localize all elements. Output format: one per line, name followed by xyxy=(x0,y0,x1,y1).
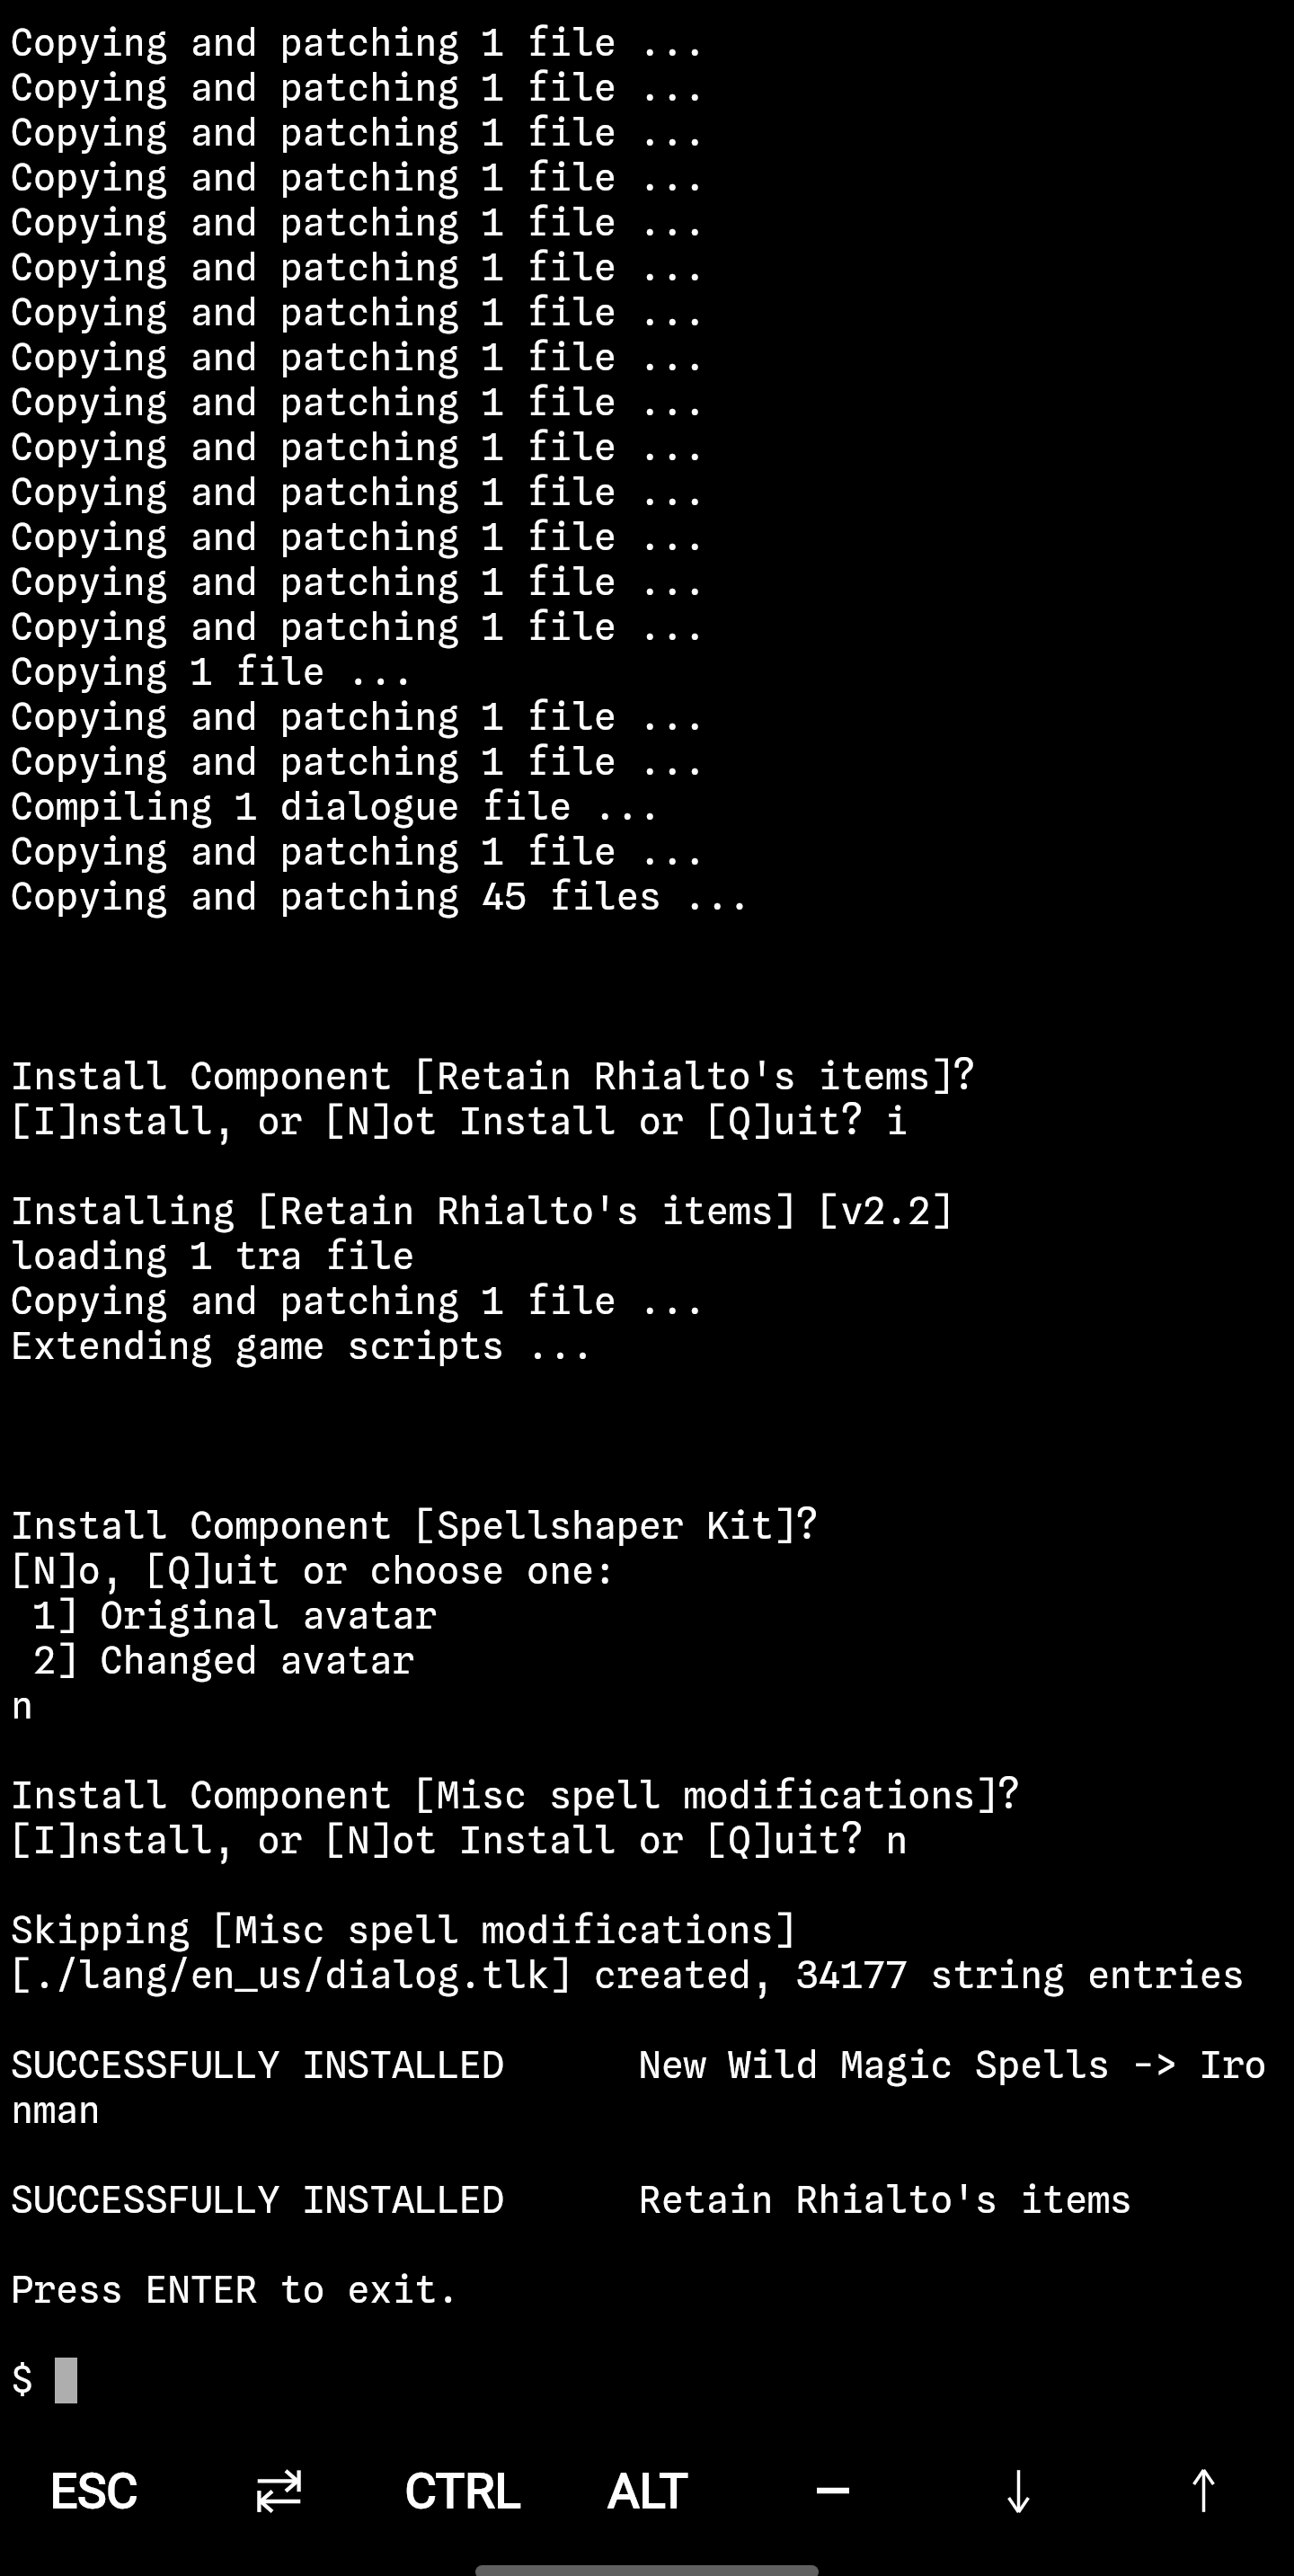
button[interactable]: Arrow down xyxy=(926,2435,1111,2546)
staticText: [I]nstall, or [N]ot Install or [Q]uit? i xyxy=(11,1098,908,1143)
button[interactable]: Minus xyxy=(740,2435,926,2546)
staticText: Copying and patching 1 file ... xyxy=(11,829,706,874)
staticText: Copying and patching 1 file ... xyxy=(11,20,706,65)
staticText: ALT xyxy=(607,2463,688,2519)
staticText: Install Component [Retain Rhialto's item… xyxy=(11,1053,976,1098)
staticText: Copying and patching 45 files ... xyxy=(11,874,751,919)
button[interactable]: Tab xyxy=(186,2435,370,2546)
staticText: n xyxy=(11,1683,33,1728)
staticText: Copying and patching 1 file ... xyxy=(11,155,706,200)
button[interactable]: ALT xyxy=(555,2435,740,2546)
staticText: Install Component [Spellshaper Kit]? xyxy=(11,1503,819,1548)
staticText: CTRL xyxy=(404,2463,521,2519)
staticText: loading 1 tra file xyxy=(11,1233,415,1278)
staticText: [N]o, [Q]uit or choose one: xyxy=(11,1548,616,1593)
staticText: Press ENTER to exit. xyxy=(11,2267,460,2312)
staticText: $ xyxy=(11,2357,56,2402)
staticText: Copying and patching 1 file ... xyxy=(11,694,706,739)
staticText: Copying and patching 1 file ... xyxy=(11,604,706,649)
staticText: Install Component [Misc spell modificati… xyxy=(11,1772,1021,1817)
staticText: Copying and patching 1 file ... xyxy=(11,514,706,559)
staticText: Copying 1 file ... xyxy=(11,649,415,694)
staticText: Copying and patching 1 file ... xyxy=(11,424,706,469)
staticText: SUCCESSFULLY INSTALLED New Wild Magic Sp… xyxy=(11,2042,1267,2087)
staticText: Installing [Retain Rhialto's items] [v2.… xyxy=(11,1188,953,1233)
staticText: SUCCESSFULLY INSTALLED Retain Rhialto's … xyxy=(11,2177,1132,2222)
staticText: Skipping [Misc spell modifications] xyxy=(11,1907,796,1952)
staticText: nman xyxy=(11,2087,101,2132)
button[interactable]: Arrow up xyxy=(1111,2435,1294,2546)
staticText: Copying and patching 1 file ... xyxy=(11,379,706,424)
staticText: Copying and patching 1 file ... xyxy=(11,469,706,514)
staticText: Copying and patching 1 file ... xyxy=(11,334,706,379)
staticText: 2] Changed avatar xyxy=(11,1638,415,1683)
staticText: Copying and patching 1 file ... xyxy=(11,739,706,784)
staticText: Copying and patching 1 file ... xyxy=(11,110,706,155)
staticText: [I]nstall, or [N]ot Install or [Q]uit? n xyxy=(11,1817,908,1862)
staticText: Copying and patching 1 file ... xyxy=(11,200,706,244)
button[interactable]: ESC xyxy=(2,2435,186,2546)
staticText: [./lang/en_us/dialog.tlk] created, 34177… xyxy=(11,1952,1245,1997)
staticText: Copying and patching 1 file ... xyxy=(11,244,706,289)
staticText: Extending game scripts ... xyxy=(11,1323,594,1368)
button[interactable]: CTRL xyxy=(370,2435,555,2546)
staticText: Compiling 1 dialogue file ... xyxy=(11,784,661,829)
staticText: Copying and patching 1 file ... xyxy=(11,559,706,604)
staticText: 1] Original avatar xyxy=(11,1593,438,1638)
staticText: Copying and patching 1 file ... xyxy=(11,1278,706,1323)
staticText: Copying and patching 1 file ... xyxy=(11,65,706,110)
staticText: ESC xyxy=(49,2463,138,2519)
staticText: Copying and patching 1 file ... xyxy=(11,289,706,334)
